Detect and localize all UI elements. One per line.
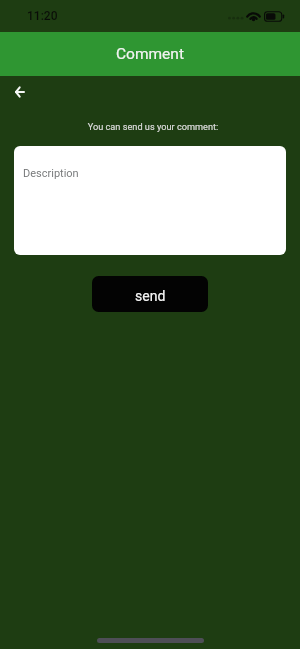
staticText: send <box>135 288 166 304</box>
staticText: Description <box>23 167 79 180</box>
staticText: Comment <box>116 45 184 63</box>
staticText: 11:20 <box>27 9 58 23</box>
button[interactable]: send <box>92 276 208 312</box>
button[interactable]: Description <box>14 146 286 255</box>
staticText: You can send us your comment: <box>3 121 300 132</box>
button[interactable]: Back <box>6 78 34 106</box>
